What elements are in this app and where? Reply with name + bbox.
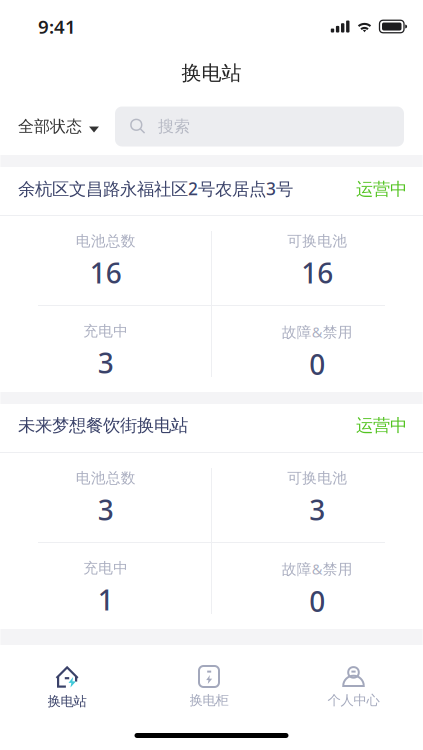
button[interactable]: 全部状态 xyxy=(0,106,115,146)
staticText: 9:41 xyxy=(38,14,76,39)
staticText: 3 xyxy=(309,491,325,528)
staticText: 余杭区文昌路永福社区2号农居点3号 xyxy=(18,177,293,200)
staticText: 充电中 xyxy=(83,322,128,340)
staticText: 运营中 xyxy=(356,179,407,200)
staticText: 搜索 xyxy=(158,117,190,136)
staticText: 运营中 xyxy=(356,415,407,436)
staticText: 全部状态 xyxy=(18,117,82,136)
staticText: 可换电池 xyxy=(287,469,347,487)
staticText: 故障&禁用 xyxy=(282,322,353,341)
staticText: 0 xyxy=(309,582,325,620)
staticText: 未来梦想餐饮街换电站 xyxy=(18,415,188,436)
button[interactable]: 个人中心 xyxy=(284,645,423,750)
staticText: 换电站 xyxy=(181,61,241,85)
staticText: 3 xyxy=(98,491,114,528)
staticText: 换电柜 xyxy=(189,692,228,708)
staticText: 电池总数 xyxy=(76,232,136,250)
staticText: 1 xyxy=(98,581,114,618)
staticText: 16 xyxy=(301,254,333,291)
staticText: 充电中 xyxy=(83,559,128,577)
staticText: 故障&禁用 xyxy=(282,559,353,578)
staticText: 0 xyxy=(309,345,325,383)
button[interactable]: 换电柜 xyxy=(134,645,284,750)
button[interactable]: 换电站 xyxy=(0,645,134,750)
staticText: 可换电池 xyxy=(287,232,347,250)
button[interactable]: 搜索 xyxy=(115,106,404,146)
staticText: 电池总数 xyxy=(76,469,136,487)
staticText: 换电站 xyxy=(47,693,86,709)
staticText: 个人中心 xyxy=(327,692,379,708)
staticText: 3 xyxy=(98,344,114,381)
staticText: 16 xyxy=(90,254,122,291)
